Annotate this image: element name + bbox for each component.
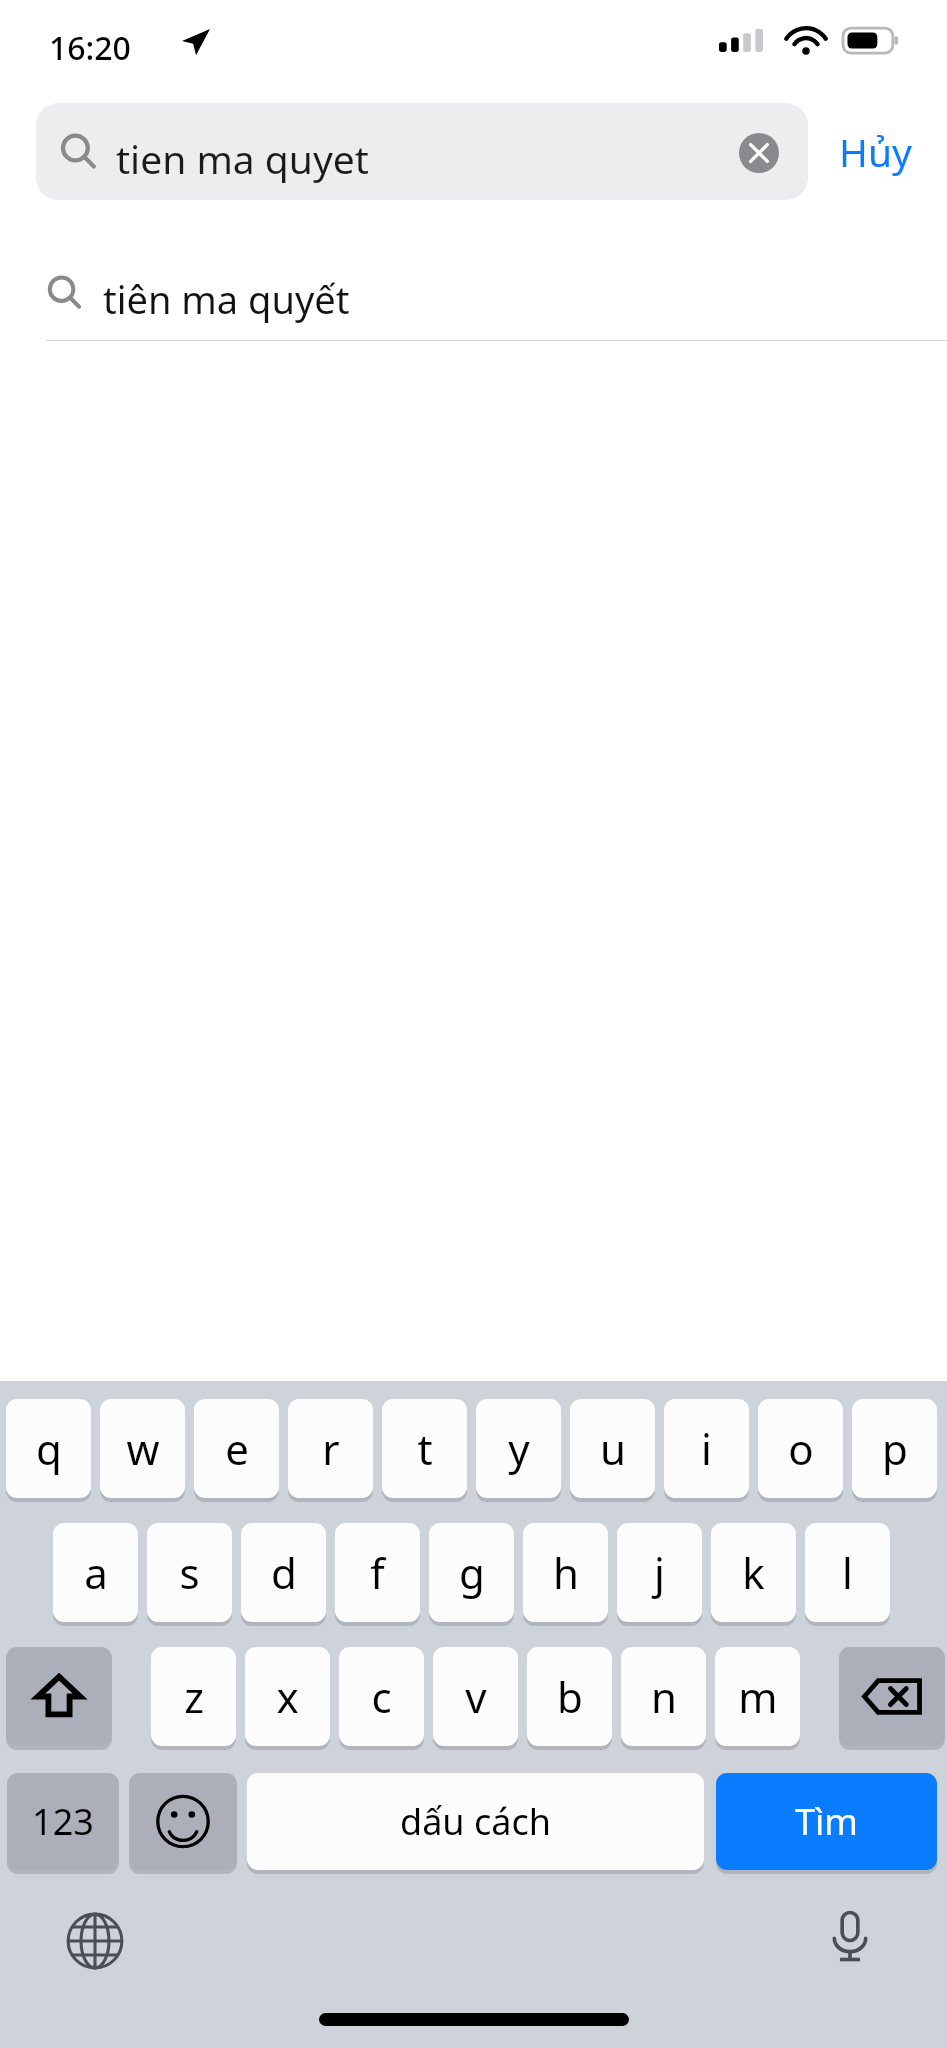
- staticText: g: [459, 1544, 485, 1601]
- button[interactable]: b: [527, 1647, 612, 1750]
- staticText: l: [842, 1544, 853, 1601]
- button[interactable]: x: [245, 1647, 330, 1750]
- staticText: m: [738, 1668, 778, 1725]
- button[interactable]: u: [570, 1399, 655, 1502]
- button[interactable]: Biểu tượng cảm xúc: [129, 1773, 237, 1874]
- staticText: x: [276, 1668, 299, 1725]
- button[interactable]: 123: [7, 1773, 119, 1874]
- button[interactable]: w: [100, 1399, 185, 1502]
- staticText: b: [557, 1668, 583, 1725]
- staticText: tien ma quyet: [116, 132, 369, 185]
- staticText: i: [701, 1420, 712, 1477]
- button[interactable]: Shift: [6, 1647, 112, 1750]
- staticText: f: [370, 1544, 385, 1601]
- staticText: j: [654, 1544, 665, 1601]
- staticText: 123: [32, 1797, 94, 1846]
- button[interactable]: z: [151, 1647, 236, 1750]
- staticText: z: [184, 1668, 204, 1725]
- button[interactable]: tien ma quyet: [36, 103, 808, 200]
- button[interactable]: r: [288, 1399, 373, 1502]
- button[interactable]: y: [476, 1399, 561, 1502]
- staticText: s: [179, 1544, 200, 1601]
- button[interactable]: q: [6, 1399, 91, 1502]
- button[interactable]: Đọc chính tả: [822, 1908, 878, 1964]
- button[interactable]: p: [852, 1399, 937, 1502]
- button[interactable]: d: [241, 1523, 326, 1626]
- button[interactable]: m: [715, 1647, 800, 1750]
- button[interactable]: l: [805, 1523, 890, 1626]
- staticText: dấu cách: [400, 1797, 551, 1846]
- button[interactable]: h: [523, 1523, 608, 1626]
- button[interactable]: tiên ma quyết: [0, 248, 947, 340]
- button[interactable]: a: [53, 1523, 138, 1626]
- button[interactable]: f: [335, 1523, 420, 1626]
- staticText: r: [322, 1420, 340, 1477]
- button[interactable]: Xoá: [739, 133, 779, 173]
- button[interactable]: n: [621, 1647, 706, 1750]
- button[interactable]: Đổi bàn phím: [67, 1913, 123, 1969]
- button[interactable]: g: [429, 1523, 514, 1626]
- staticText: n: [651, 1668, 677, 1725]
- button[interactable]: j: [617, 1523, 702, 1626]
- button[interactable]: Xoá ký tự: [839, 1647, 945, 1750]
- button[interactable]: k: [711, 1523, 796, 1626]
- staticText: v: [465, 1668, 487, 1725]
- button[interactable]: e: [194, 1399, 279, 1502]
- staticText: k: [742, 1544, 765, 1601]
- staticText: w: [126, 1420, 160, 1477]
- staticText: e: [225, 1420, 249, 1477]
- staticText: tiên ma quyết: [103, 273, 350, 325]
- staticText: Tìm: [795, 1797, 858, 1846]
- button[interactable]: dấu cách: [247, 1773, 704, 1874]
- staticText: c: [371, 1668, 392, 1725]
- staticText: a: [84, 1544, 108, 1601]
- staticText: t: [417, 1420, 433, 1477]
- staticText: h: [553, 1544, 579, 1601]
- button[interactable]: i: [664, 1399, 749, 1502]
- button[interactable]: t: [382, 1399, 467, 1502]
- staticText: 16:20: [49, 26, 131, 70]
- staticText: y: [508, 1420, 530, 1477]
- button[interactable]: c: [339, 1647, 424, 1750]
- button[interactable]: o: [758, 1399, 843, 1502]
- staticText: o: [788, 1420, 814, 1477]
- staticText: p: [882, 1420, 908, 1477]
- button[interactable]: s: [147, 1523, 232, 1626]
- staticText: u: [600, 1420, 626, 1477]
- button[interactable]: v: [433, 1647, 518, 1750]
- button[interactable]: Tìm: [716, 1773, 937, 1874]
- staticText: d: [271, 1544, 297, 1601]
- button[interactable]: Hủy: [820, 110, 930, 192]
- staticText: Hủy: [839, 125, 912, 178]
- staticText: q: [36, 1420, 62, 1477]
